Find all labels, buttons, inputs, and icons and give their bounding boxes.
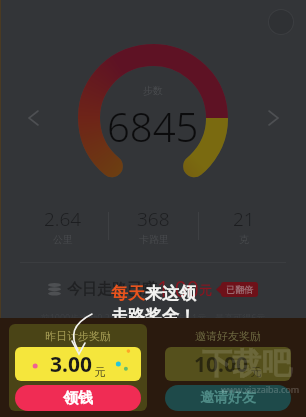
staticText: 3.00 — [50, 350, 92, 379]
staticText: 元 — [248, 364, 262, 379]
button[interactable]: 今日走路已赚 — [0, 275, 306, 304]
staticText: 步数 — [143, 84, 163, 97]
staticText: 10.00 — [194, 350, 248, 379]
staticText: 邀请好友 — [200, 389, 256, 407]
button[interactable]: 368 — [109, 206, 198, 246]
staticText: 昨日计步奖励 — [45, 329, 111, 343]
button[interactable]: 昨日计步奖励 — [9, 324, 147, 411]
staticText: 21 — [233, 206, 255, 232]
button[interactable]: Next — [262, 107, 284, 129]
staticText: 邀请好友奖励 — [195, 329, 261, 343]
staticText: 领钱 — [63, 389, 93, 408]
staticText: 已翻倍 — [226, 284, 253, 295]
staticText: 卡路里 — [139, 233, 169, 246]
staticText: 2.64 — [44, 206, 82, 232]
staticText: 下载吧 — [202, 345, 292, 383]
staticText: 今日走路已赚 — [67, 280, 157, 299]
button[interactable]: Info — [268, 9, 294, 35]
button[interactable]: 2.64 — [18, 206, 108, 246]
staticText: 克 — [239, 233, 249, 246]
staticText: 前1000步奖励0.2元，之后每1000步0.1元，最高可得6元 — [0, 311, 306, 323]
staticText: 元 — [92, 364, 106, 379]
staticText: 1.00 — [157, 275, 199, 304]
button[interactable]: 邀请好友 — [165, 385, 291, 411]
button[interactable]: Previous — [22, 107, 44, 129]
staticText: 每天 — [111, 283, 145, 304]
staticText: 公里 — [53, 233, 73, 246]
staticText: 走路奖金！ — [111, 306, 196, 327]
staticText: 6845 — [107, 99, 199, 153]
button[interactable]: 邀请好友奖励 — [159, 324, 297, 411]
staticText: 元 — [199, 282, 212, 298]
staticText: 368 — [137, 206, 170, 232]
staticText: www.xiazaiba.com — [221, 383, 300, 395]
staticText: 来这领 — [145, 283, 196, 304]
button[interactable]: 领钱 — [15, 385, 141, 411]
